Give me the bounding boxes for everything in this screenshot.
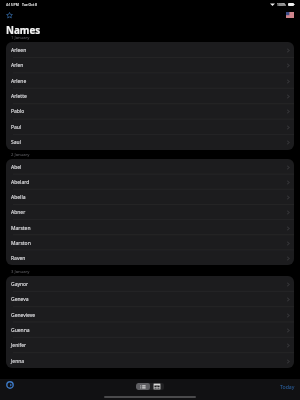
staticText: Saul <box>11 139 21 146</box>
staticText: Jenna <box>11 358 25 365</box>
button[interactable]: Gaynor <box>6 276 294 291</box>
staticText: Tue Oct 8 <box>22 2 37 7</box>
button[interactable]: Arlen <box>6 57 294 72</box>
button[interactable]: Arleen <box>6 42 294 57</box>
staticText: Geneva <box>11 296 29 303</box>
button[interactable]: Abner <box>6 204 294 219</box>
staticText: 2 January <box>11 152 30 158</box>
button[interactable]: Jenna <box>6 353 294 368</box>
button[interactable]: Abel <box>6 159 294 174</box>
staticText: Marsten <box>11 225 31 232</box>
button[interactable]: Genevieve <box>6 307 294 322</box>
staticText: Gaynor <box>11 281 29 288</box>
staticText: Arleen <box>11 47 27 54</box>
staticText: 4:15 PM <box>6 2 19 7</box>
staticText: Abel <box>11 164 22 171</box>
staticText: Today <box>280 383 295 390</box>
staticText: Abner <box>11 209 26 216</box>
button[interactable]: Favorites <box>5 11 14 20</box>
button[interactable]: Pablo <box>6 103 294 118</box>
button[interactable]: List view <box>136 383 150 390</box>
staticText: 100% <box>277 2 286 7</box>
staticText: 3 January <box>11 269 30 275</box>
button[interactable]: History <box>6 381 14 389</box>
staticText: Abella <box>11 194 26 201</box>
staticText: Names <box>6 24 41 37</box>
button[interactable]: Jenifer <box>6 337 294 352</box>
button[interactable]: Calendar view <box>150 383 164 390</box>
button[interactable]: Paul <box>6 119 294 134</box>
button[interactable]: Saul <box>6 134 294 149</box>
button[interactable]: Marsten <box>6 220 294 235</box>
button[interactable]: Abelard <box>6 174 294 189</box>
staticText: Raven <box>11 255 26 262</box>
button[interactable]: Guenna <box>6 322 294 337</box>
button[interactable]: Geneva <box>6 291 294 306</box>
staticText: Jenifer <box>11 342 27 349</box>
staticText: Abelard <box>11 179 30 186</box>
button[interactable]: Abella <box>6 189 294 204</box>
button[interactable]: Marston <box>6 235 294 250</box>
staticText: Genevieve <box>11 312 36 319</box>
staticText: 1 January <box>11 35 30 41</box>
button[interactable]: Today <box>280 383 295 390</box>
button[interactable]: Arlene <box>6 73 294 88</box>
staticText: Arlen <box>11 62 24 69</box>
staticText: Guenna <box>11 327 30 334</box>
staticText: Pablo <box>11 108 25 115</box>
staticText: Arlene <box>11 78 27 85</box>
staticText: Arlette <box>11 93 27 100</box>
button[interactable]: Arlette <box>6 88 294 103</box>
staticText: Paul <box>11 124 22 131</box>
button[interactable]: Raven <box>6 250 294 265</box>
staticText: Marston <box>11 240 31 247</box>
